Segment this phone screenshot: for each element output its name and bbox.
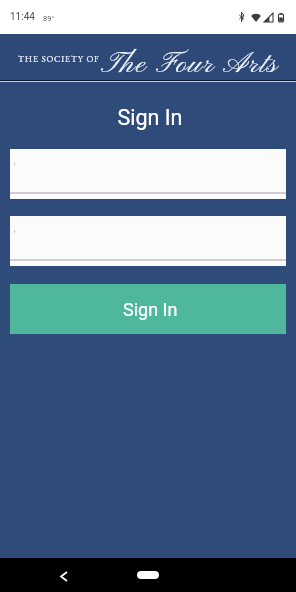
staticText: 89° [43, 14, 55, 23]
staticText: Sign In [2, 105, 296, 130]
button[interactable]: Home [137, 571, 159, 579]
button[interactable] [10, 149, 286, 199]
button[interactable] [10, 216, 286, 266]
button[interactable]: Back [48, 559, 80, 591]
staticText: Sign In [123, 299, 178, 320]
staticText: The Four Arts [101, 46, 279, 83]
button[interactable]: Sign In [10, 284, 286, 334]
staticText: 11:44 [10, 11, 35, 23]
staticText: THE SOCIETY OF [18, 53, 100, 65]
